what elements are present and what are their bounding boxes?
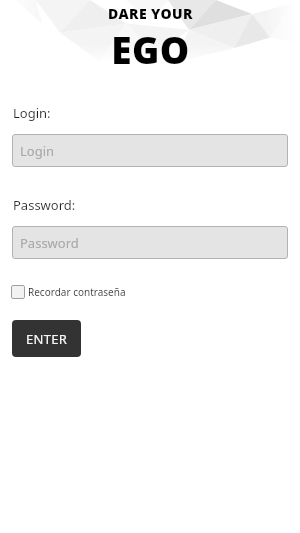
staticText: Password bbox=[20, 234, 79, 252]
button[interactable]: ENTER bbox=[12, 320, 81, 357]
staticText: Login: bbox=[13, 104, 51, 122]
button[interactable]: Password bbox=[12, 226, 288, 259]
staticText: DARE YOUR bbox=[108, 4, 193, 23]
staticText: Login bbox=[20, 142, 55, 160]
staticText: Recordar contraseña bbox=[28, 285, 126, 299]
staticText: Password: bbox=[13, 196, 76, 214]
button[interactable]: Login bbox=[12, 134, 288, 167]
button[interactable]: Recordar contraseña bbox=[11, 285, 126, 299]
staticText: EGO bbox=[111, 24, 190, 74]
staticText: ENTER bbox=[26, 330, 68, 348]
